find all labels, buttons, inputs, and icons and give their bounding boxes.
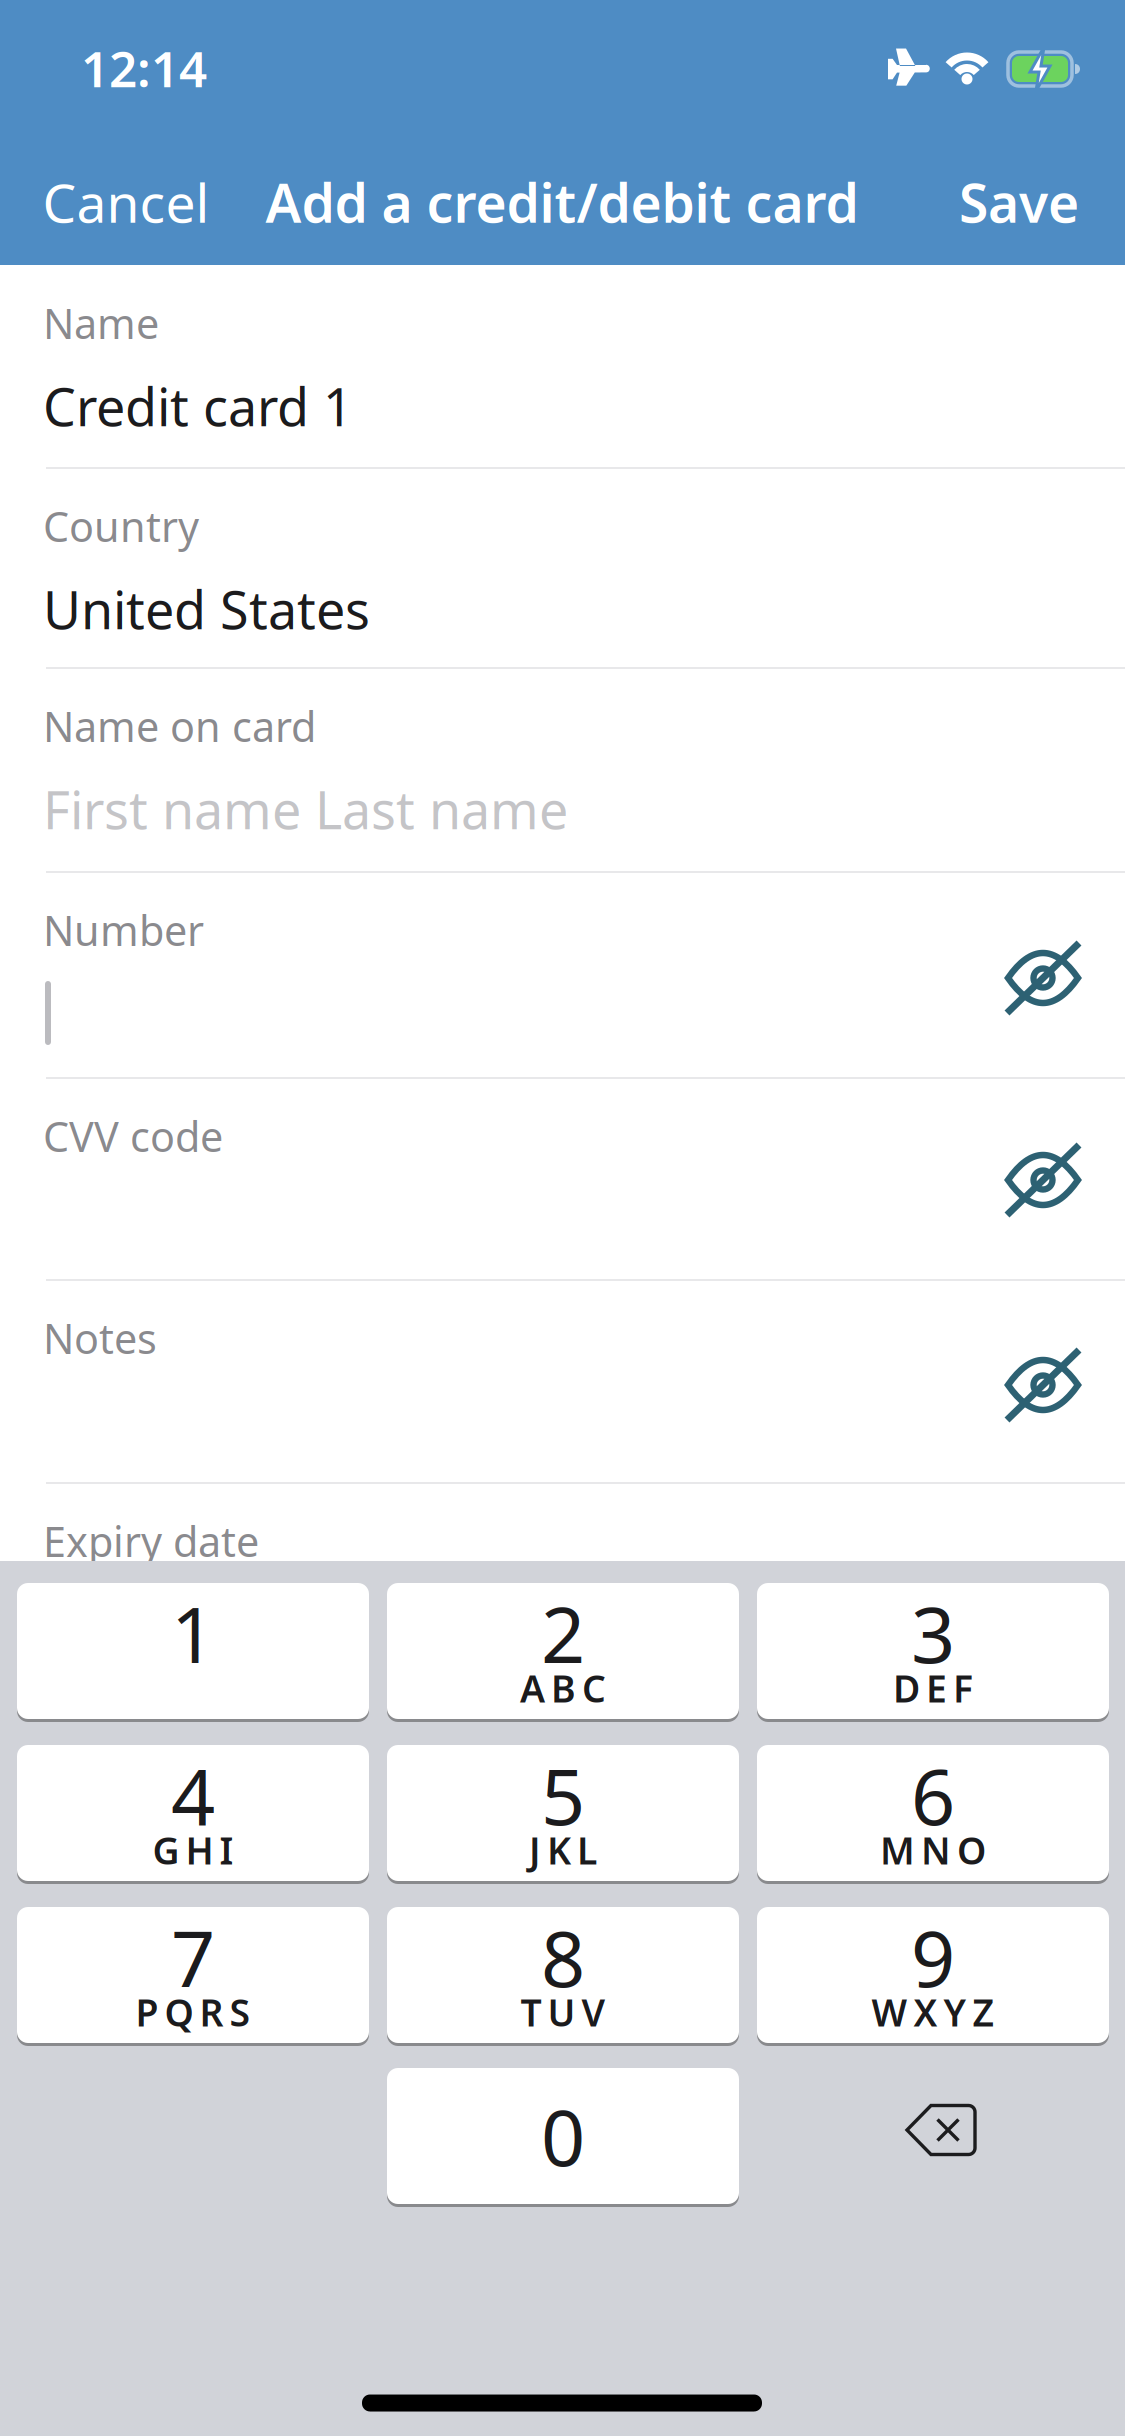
staticText: Credit card 1 <box>43 371 353 441</box>
staticText: 0 <box>541 2085 585 2187</box>
staticText: TUV <box>520 1987 605 2037</box>
staticText: GHI <box>152 1825 233 1875</box>
button[interactable]: Show value <box>993 928 1093 1028</box>
button[interactable]: Cancel <box>42 167 209 237</box>
staticText: Add a credit/debit card <box>265 167 858 237</box>
button[interactable]: Country <box>0 468 1125 668</box>
staticText: 6 <box>911 1744 955 1846</box>
staticText: PQRS <box>135 1987 250 2037</box>
button[interactable]: 9 <box>757 1907 1109 2043</box>
staticText: First name Last name <box>43 774 568 844</box>
button[interactable]: 5 <box>387 1745 739 1881</box>
staticText: 4 <box>171 1744 215 1846</box>
button[interactable]: 0 <box>387 2068 739 2204</box>
staticText: Name on card <box>43 699 316 753</box>
staticText: 1 <box>171 1582 215 1684</box>
staticText: 12:14 <box>81 35 207 101</box>
button[interactable]: Notes <box>0 1280 1125 1483</box>
staticText: Country <box>43 499 199 553</box>
staticText: ABC <box>520 1663 606 1713</box>
button[interactable]: 8 <box>387 1907 739 2043</box>
staticText: CVV code <box>43 1109 223 1163</box>
button[interactable]: 1 <box>17 1583 369 1719</box>
staticText: Cancel <box>42 167 209 237</box>
staticText: 2 <box>541 1582 585 1684</box>
staticText: 9 <box>911 1906 955 2008</box>
button[interactable]: 3 <box>757 1583 1109 1719</box>
staticText: United States <box>43 574 370 644</box>
staticText: 3 <box>911 1582 955 1684</box>
button[interactable]: 2 <box>387 1583 739 1719</box>
staticText: 5 <box>541 1744 585 1846</box>
button[interactable]: Number <box>0 872 1125 1078</box>
button[interactable]: Expiry date <box>0 1483 1125 1623</box>
button[interactable]: CVV code <box>0 1078 1125 1280</box>
button[interactable]: Show value <box>993 1130 1093 1230</box>
staticText: DEF <box>893 1663 973 1713</box>
staticText: MNO <box>880 1825 986 1875</box>
button[interactable]: 6 <box>757 1745 1109 1881</box>
staticText: 8 <box>541 1906 585 2008</box>
button[interactable]: Save <box>959 167 1079 237</box>
staticText: Name <box>43 296 159 350</box>
button[interactable]: Name on card <box>0 668 1125 872</box>
button[interactable]: 7 <box>17 1907 369 2043</box>
staticText: Expiry date <box>43 1514 259 1568</box>
staticText: Notes <box>43 1311 157 1365</box>
button[interactable]: Delete <box>894 2087 984 2173</box>
button[interactable]: Show value <box>993 1335 1093 1435</box>
button[interactable]: Name <box>0 265 1125 468</box>
staticText: Save <box>959 167 1079 237</box>
staticText: WXYZ <box>871 1987 994 2037</box>
staticText: 7 <box>171 1906 215 2008</box>
staticText: JKL <box>529 1825 597 1875</box>
button[interactable]: 4 <box>17 1745 369 1881</box>
staticText: Number <box>43 903 204 957</box>
